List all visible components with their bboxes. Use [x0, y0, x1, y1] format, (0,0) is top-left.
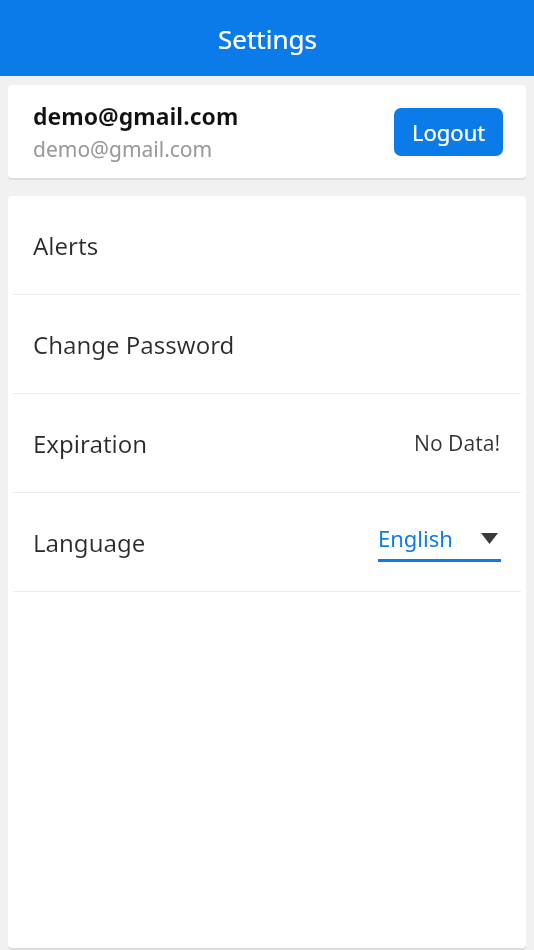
staticText: Change Password [33, 328, 235, 361]
button[interactable]: Select language [378, 523, 501, 562]
staticText: Expiration [33, 427, 148, 460]
button[interactable]: Alerts [8, 196, 526, 294]
staticText: demo@gmail.com [33, 135, 213, 164]
staticText: Logout [412, 117, 486, 147]
button[interactable]: Expiration [8, 394, 526, 492]
staticText: Alerts [33, 229, 99, 262]
staticText: English [378, 523, 453, 553]
button[interactable]: Logout [394, 108, 503, 156]
staticText: Settings [218, 21, 317, 56]
staticText: Language [33, 526, 146, 559]
button[interactable]: Change Password [8, 295, 526, 393]
button[interactable]: Language [8, 493, 526, 591]
staticText: No Data! [414, 429, 501, 458]
staticText: demo@gmail.com [33, 100, 239, 131]
